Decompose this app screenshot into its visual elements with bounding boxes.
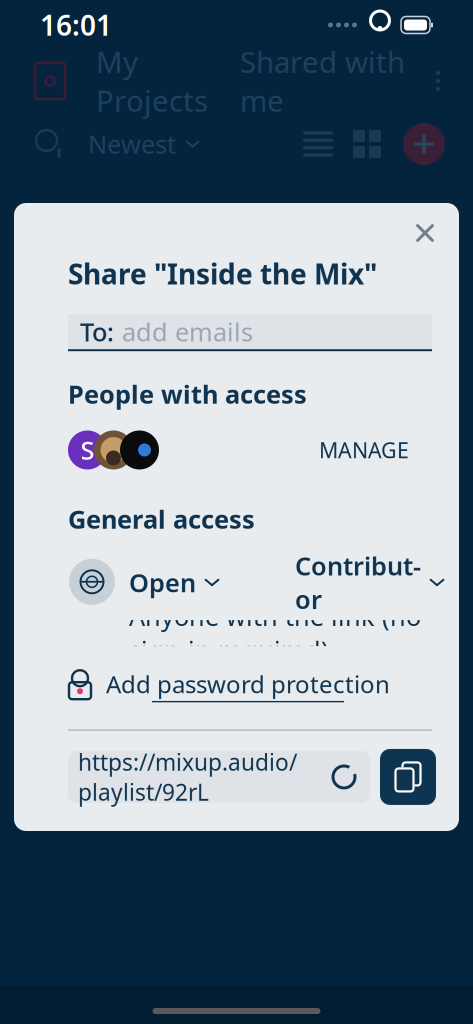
staticText: People with access (68, 377, 307, 411)
button[interactable]: List view (301, 127, 335, 161)
button[interactable]: Add password protection (66, 668, 390, 702)
button[interactable]: More options (425, 61, 451, 101)
button[interactable]: Close (405, 213, 445, 253)
staticText: Add password protection (106, 668, 390, 700)
staticText: Share "Inside the Mix" (68, 255, 377, 292)
button[interactable]: Member P (120, 430, 159, 469)
staticText: General access (68, 502, 255, 536)
staticText: MANAGE (319, 436, 409, 464)
staticText: Newest (88, 127, 176, 161)
button[interactable]: Member S (68, 430, 107, 469)
staticText: Anyone with the link (no sign-in require… (129, 599, 421, 667)
staticText: 16:01 (40, 6, 112, 44)
staticText: https://mixup.audio/playlist/92rL (78, 747, 297, 807)
button[interactable]: MANAGE (311, 428, 417, 472)
staticText: add emails (122, 315, 253, 348)
staticText: S (80, 433, 94, 467)
staticText: Shared with me (240, 42, 405, 120)
staticText: To: (80, 315, 114, 348)
button[interactable]: Shared with me (234, 42, 411, 120)
button[interactable]: New project (403, 123, 445, 165)
button[interactable]: Contributor (295, 549, 444, 616)
button[interactable]: Regenerate link (324, 757, 364, 797)
button[interactable]: Open (129, 566, 219, 599)
button[interactable]: To: (68, 314, 432, 351)
staticText: My Projects (96, 42, 208, 120)
staticText: Open (129, 566, 196, 599)
button[interactable]: Grid view (351, 128, 383, 160)
button[interactable]: Member photo (94, 430, 133, 469)
button[interactable]: Newest (88, 127, 199, 161)
button[interactable]: Copy link (380, 749, 436, 805)
button[interactable]: Search (28, 122, 72, 166)
staticText: Contributor (295, 549, 421, 616)
button[interactable]: Home (22, 53, 78, 109)
button[interactable]: My Projects (90, 42, 214, 120)
